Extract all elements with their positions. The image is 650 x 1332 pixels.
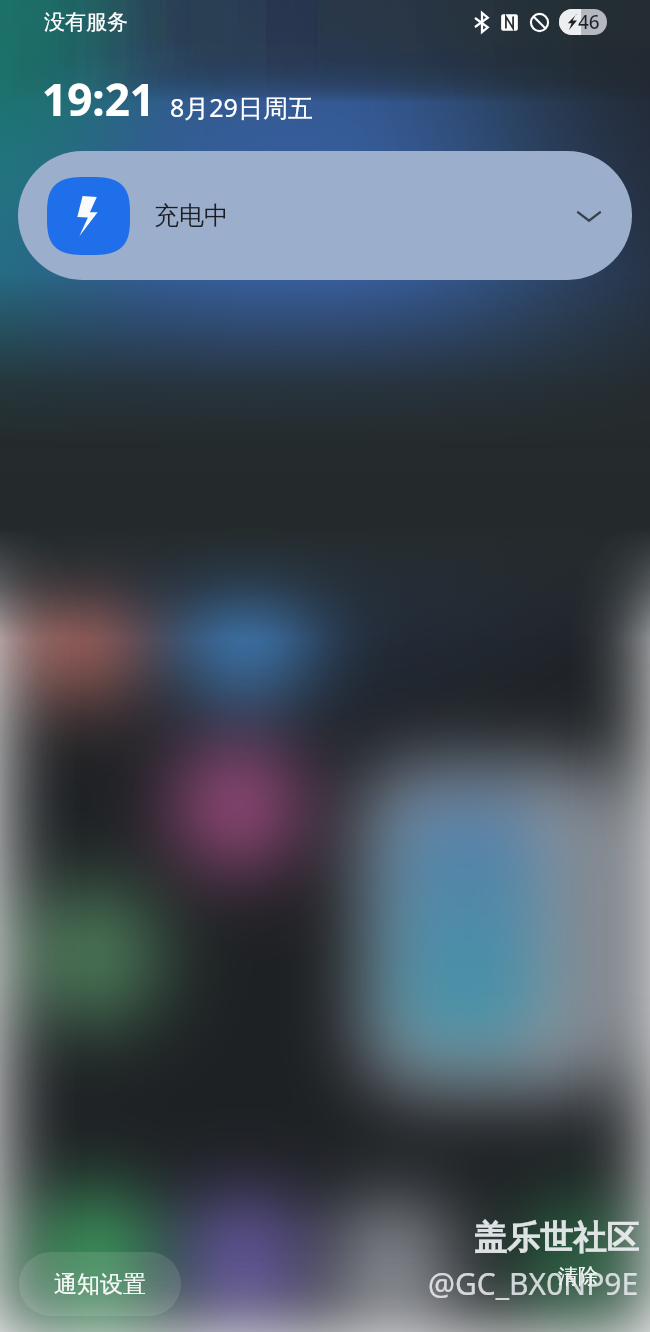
staticText: 46 — [578, 9, 600, 35]
staticText: 没有服务 — [44, 9, 128, 35]
staticText: 通知设置 — [54, 1270, 146, 1299]
staticText: 19:21 — [42, 69, 156, 129]
other: Expand notification — [576, 203, 602, 229]
staticText: @GC_BX0NP9E — [428, 1263, 639, 1304]
staticText: 8月29日周五 — [170, 90, 313, 124]
staticText: 清除 — [558, 1264, 598, 1289]
button[interactable]: 充电中 — [18, 151, 632, 280]
staticText: 盖乐世社区 — [474, 1217, 639, 1259]
staticText: 充电中 — [154, 200, 229, 231]
button[interactable]: 通知设置 — [19, 1252, 181, 1316]
button[interactable]: 清除 — [536, 1247, 620, 1306]
